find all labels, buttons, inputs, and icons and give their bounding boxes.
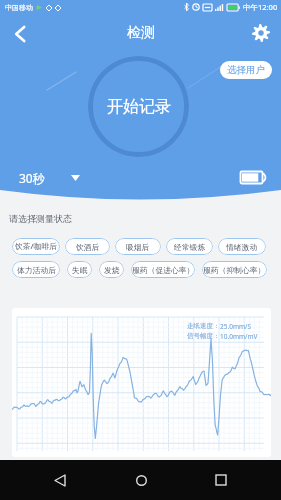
button[interactable]: 失眠	[67, 261, 92, 278]
staticText: 30秒	[19, 170, 45, 186]
staticText: 服药（促进心率）	[132, 265, 195, 275]
staticText: 体力活动后	[17, 265, 56, 275]
staticText: 走纸速度：	[187, 322, 220, 330]
button[interactable]: 服药（促进心率）	[131, 261, 195, 278]
staticText: 10.0mm/mV	[220, 332, 258, 341]
staticText: 中国移动	[5, 3, 33, 12]
staticText: 情绪激动	[226, 242, 258, 252]
staticText: 饮茶/咖啡后	[15, 241, 57, 252]
staticText: 25.0mm/S	[220, 322, 252, 331]
staticText: 吸烟后	[126, 242, 150, 252]
staticText: 检测	[127, 24, 155, 42]
button[interactable]: 情绪激动	[218, 238, 266, 255]
button[interactable]: 发烧	[99, 261, 124, 278]
button[interactable]: 饮茶/咖啡后	[12, 238, 60, 255]
staticText: 服药（抑制心率）	[203, 265, 266, 275]
staticText: 发烧	[104, 265, 120, 275]
button[interactable]: Settings	[244, 16, 278, 50]
button[interactable]: 选择用户	[220, 61, 272, 79]
button[interactable]: Back	[4, 18, 36, 50]
staticText: 失眠	[72, 265, 88, 275]
staticText: 请选择测量状态	[9, 213, 72, 224]
button[interactable]: Recent apps	[201, 460, 241, 500]
staticText: 饮酒后	[76, 242, 100, 252]
button[interactable]: 经常锻炼	[166, 238, 213, 255]
button[interactable]: 体力活动后	[12, 261, 60, 278]
button[interactable]: 开始记录	[88, 56, 189, 157]
staticText: 信号幅度：	[187, 332, 220, 340]
staticText: 开始记录	[107, 97, 171, 117]
button[interactable]: 饮酒后	[65, 238, 110, 255]
staticText: 经常锻炼	[174, 242, 206, 252]
button[interactable]: 服药（抑制心率）	[202, 261, 267, 278]
button[interactable]: Back	[40, 460, 80, 500]
button[interactable]: 30秒	[17, 168, 84, 188]
staticText: 中午12:00	[243, 2, 278, 12]
button[interactable]: 吸烟后	[115, 238, 161, 255]
staticText: 选择用户	[227, 64, 265, 76]
button[interactable]: Home	[121, 460, 161, 500]
